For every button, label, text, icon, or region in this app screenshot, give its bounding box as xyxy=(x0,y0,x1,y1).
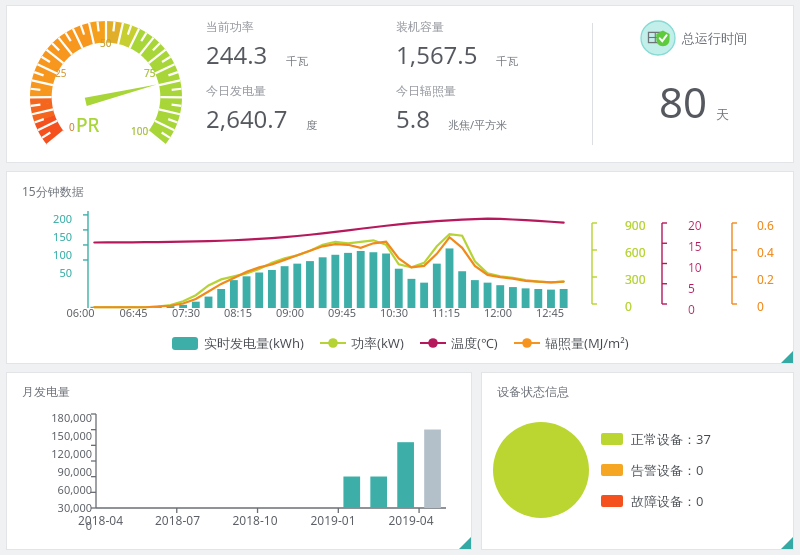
staticText: 2018-07 xyxy=(139,512,216,528)
staticText: 0 xyxy=(688,301,695,317)
staticText: 25 xyxy=(55,66,67,80)
staticText: 设备状态信息 xyxy=(497,384,569,399)
staticText: 月发电量 xyxy=(22,384,70,399)
button[interactable]: 15分钟数据 xyxy=(6,171,794,364)
staticText: 2,640.7 xyxy=(206,102,288,135)
staticText: 1,567.5 xyxy=(396,38,478,71)
staticText: 0 xyxy=(757,298,764,314)
staticText: 总运行时间 xyxy=(682,30,747,46)
button[interactable]: 告警设备：0 xyxy=(601,461,704,479)
staticText: 600 xyxy=(625,244,646,260)
staticText: 244.3 xyxy=(206,38,268,71)
staticText: 0.6 xyxy=(757,217,774,233)
staticText: 90,000 xyxy=(28,464,92,479)
staticText: 5.8 xyxy=(396,102,430,135)
button[interactable]: 故障设备：0 xyxy=(601,492,704,510)
other: 运行状态 xyxy=(641,21,675,55)
staticText: 300 xyxy=(625,271,646,287)
staticText: 2018-10 xyxy=(216,512,294,528)
staticText: 正常设备：37 xyxy=(631,430,711,448)
staticText: 09:45 xyxy=(316,305,368,320)
staticText: 0.4 xyxy=(757,244,774,260)
staticText: 100 xyxy=(44,247,72,262)
staticText: 0.2 xyxy=(757,271,774,287)
staticText: 11:15 xyxy=(420,305,472,320)
staticText: 06:45 xyxy=(107,305,160,320)
staticText: 2019-04 xyxy=(372,512,450,528)
staticText: 150,000 xyxy=(28,428,92,443)
staticText: 50 xyxy=(100,36,112,50)
staticText: PR xyxy=(76,112,100,138)
staticText: 度 xyxy=(306,118,317,132)
staticText: 当前功率 xyxy=(206,19,254,34)
staticText: 15分钟数据 xyxy=(22,183,84,199)
staticText: 今日发电量 xyxy=(206,83,266,98)
staticText: 08:15 xyxy=(212,305,264,320)
button[interactable]: 实时发电量(kWh) xyxy=(172,334,304,352)
staticText: 12:45 xyxy=(524,305,576,320)
staticText: 温度(℃) xyxy=(451,334,498,352)
staticText: 5 xyxy=(688,280,695,296)
staticText: 千瓦 xyxy=(286,54,308,68)
staticText: 功率(kW) xyxy=(351,334,404,352)
staticText: 0 xyxy=(69,120,75,134)
staticText: 实时发电量(kWh) xyxy=(204,334,304,352)
staticText: 故障设备：0 xyxy=(631,492,704,510)
staticText: 今日辐照量 xyxy=(396,83,456,98)
staticText: 100 xyxy=(131,124,149,138)
staticText: 10 xyxy=(688,259,702,275)
staticText: 180,000 xyxy=(28,410,92,425)
staticText: 0 xyxy=(28,518,92,533)
staticText: 09:00 xyxy=(264,305,316,320)
button[interactable]: 辐照量(MJ/m²) xyxy=(514,334,629,352)
button[interactable]: 月发电量 xyxy=(6,372,472,550)
button[interactable]: 温度(℃) xyxy=(420,334,498,352)
button[interactable]: 功率(kW) xyxy=(320,334,404,352)
button[interactable]: 正常设备：37 xyxy=(601,430,711,448)
staticText: 0 xyxy=(625,298,632,314)
staticText: 150 xyxy=(44,229,72,244)
button[interactable]: 装机容量 xyxy=(396,19,586,71)
staticText: 12:00 xyxy=(472,305,524,320)
staticText: 900 xyxy=(625,217,646,233)
staticText: 30,000 xyxy=(28,500,92,515)
staticText: 10:30 xyxy=(368,305,420,320)
staticText: 天 xyxy=(716,106,729,122)
staticText: 辐照量(MJ/m²) xyxy=(545,334,629,352)
button[interactable]: 当前功率 xyxy=(206,19,396,71)
staticText: 50 xyxy=(44,265,72,280)
staticText: 06:00 xyxy=(54,305,107,320)
staticText: 告警设备：0 xyxy=(631,461,704,479)
staticText: 兆焦/平方米 xyxy=(448,117,508,132)
button[interactable]: 今日辐照量 xyxy=(396,83,592,135)
button[interactable]: 50 xyxy=(6,5,794,163)
staticText: 120,000 xyxy=(28,446,92,461)
staticText: 07:30 xyxy=(160,305,212,320)
staticText: 15 xyxy=(688,238,702,254)
button[interactable]: 设备状态信息 xyxy=(481,372,794,550)
staticText: 2019-01 xyxy=(294,512,372,528)
staticText: 装机容量 xyxy=(396,19,444,34)
button[interactable]: 今日发电量 xyxy=(206,83,396,135)
staticText: 2018-04 xyxy=(62,512,139,528)
staticText: 60,000 xyxy=(28,482,92,497)
staticText: 20 xyxy=(688,217,702,233)
staticText: 千瓦 xyxy=(496,54,518,68)
staticText: 80 xyxy=(659,73,708,130)
staticText: 75 xyxy=(144,66,156,80)
staticText: 200 xyxy=(44,211,72,226)
